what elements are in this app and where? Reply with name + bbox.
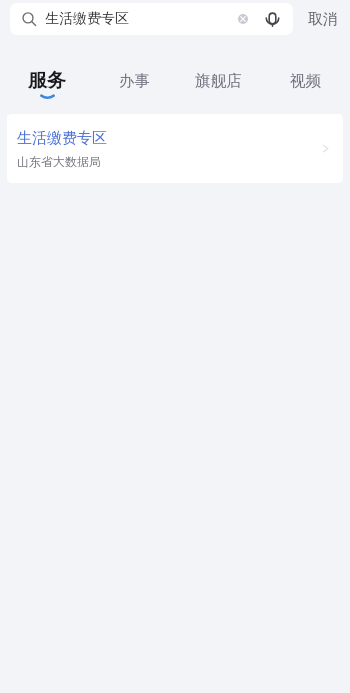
- button[interactable]: 旗舰店: [177, 44, 259, 106]
- staticText: 生活缴费专区: [17, 129, 107, 148]
- staticText: 山东省大数据局: [17, 154, 101, 169]
- button[interactable]: 视频: [264, 44, 346, 106]
- button[interactable]: 生活缴费专区: [10, 3, 293, 35]
- staticText: 服务: [28, 69, 66, 93]
- button[interactable]: Clear text: [233, 9, 253, 29]
- button[interactable]: Voice search: [262, 9, 282, 29]
- staticText: 办事: [119, 71, 150, 91]
- button[interactable]: 服务: [6, 44, 88, 106]
- staticText: 旗舰店: [195, 71, 242, 91]
- button[interactable]: 取消: [302, 6, 344, 33]
- staticText: 视频: [290, 71, 321, 91]
- button[interactable]: 办事: [93, 44, 175, 106]
- staticText: 生活缴费专区: [45, 10, 129, 28]
- staticText: 取消: [308, 10, 338, 29]
- button[interactable]: 生活缴费专区: [7, 114, 343, 183]
